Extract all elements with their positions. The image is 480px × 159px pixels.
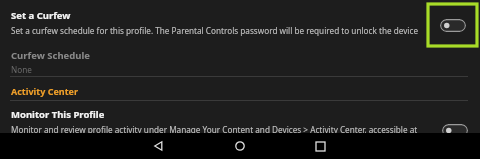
button[interactable]: Home — [220, 133, 260, 159]
staticText: Set a curfew schedule for this profile. … — [11, 25, 422, 36]
button[interactable]: Set a Curfew — [0, 0, 480, 46]
staticText: None — [11, 64, 32, 75]
button[interactable]: Toggle monitor this profile — [442, 124, 468, 137]
staticText: Monitor This Profile — [11, 108, 105, 121]
staticText: Activity Center — [11, 85, 78, 97]
button[interactable]: Back — [139, 133, 179, 159]
staticText: Set a Curfew — [11, 9, 71, 22]
button[interactable]: Activity Center — [0, 80, 480, 100]
button[interactable]: Recent apps — [300, 133, 340, 159]
button[interactable]: Curfew Schedule — [0, 46, 480, 76]
button[interactable]: Monitor This Profile — [0, 101, 480, 133]
staticText: Monitor and review profile activity unde… — [11, 124, 422, 133]
button[interactable]: Toggle curfew — [440, 19, 466, 32]
staticText: Curfew Schedule — [11, 49, 90, 62]
